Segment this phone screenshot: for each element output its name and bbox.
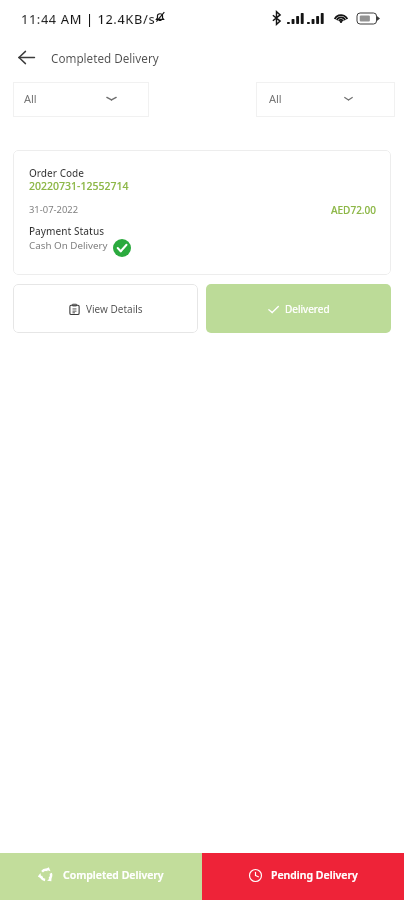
staticText: Pending Delivery	[271, 868, 358, 882]
staticText: 20220731-12552714	[29, 179, 129, 193]
staticText: 31-07-2022	[29, 203, 79, 216]
staticText: Cash On Delivery	[29, 239, 108, 252]
button[interactable]: Delivered	[206, 284, 391, 333]
button[interactable]: Order Code	[13, 150, 391, 275]
button[interactable]: Back	[0, 40, 404, 74]
button[interactable]: All	[13, 82, 149, 117]
staticText: 11:44 AM | 12.4KB/s	[21, 10, 156, 27]
button[interactable]: View Details	[13, 284, 198, 333]
staticText: Completed Delivery	[51, 50, 159, 66]
button[interactable]: Pending Delivery	[202, 853, 404, 900]
staticText: All	[269, 91, 282, 106]
staticText: Completed Delivery	[63, 868, 164, 882]
button[interactable]: Completed Delivery	[0, 853, 202, 900]
button[interactable]: All	[256, 82, 395, 117]
staticText: AED72.00	[331, 203, 377, 217]
staticText: Delivered	[285, 302, 330, 316]
button[interactable]: Back	[13, 44, 39, 70]
staticText: All	[24, 91, 37, 106]
staticText: Order Code	[29, 166, 85, 180]
staticText: Payment Status	[29, 224, 105, 238]
staticText: View Details	[86, 302, 143, 316]
